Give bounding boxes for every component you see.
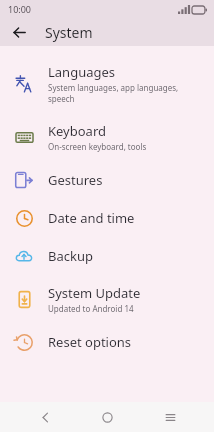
button[interactable]: Reset options — [0, 323, 214, 361]
staticText: System languages, app languages, speech — [48, 82, 202, 104]
button[interactable]: Recent apps — [152, 402, 188, 432]
button[interactable]: Gestures — [0, 161, 214, 199]
staticText: Languages — [48, 63, 116, 81]
staticText: Gestures — [48, 171, 103, 189]
staticText: Keyboard — [48, 122, 107, 140]
staticText: Date and time — [48, 209, 135, 227]
staticText: System Update — [48, 284, 141, 302]
button[interactable]: Home — [89, 402, 125, 432]
button[interactable]: Date and time — [0, 199, 214, 237]
button[interactable]: Keyboard — [0, 113, 214, 161]
staticText: 10:00 — [8, 3, 32, 15]
button[interactable]: Back — [27, 402, 63, 432]
button[interactable]: Back — [6, 19, 32, 45]
staticText: Updated to Android 14 — [48, 303, 134, 314]
staticText: Reset options — [48, 333, 132, 351]
staticText: System — [45, 23, 93, 42]
button[interactable]: Backup — [0, 237, 214, 275]
button[interactable]: Languages — [0, 54, 214, 113]
staticText: On-screen keyboard, tools — [48, 141, 147, 152]
staticText: Backup — [48, 247, 93, 265]
button[interactable]: System Update — [0, 275, 214, 323]
